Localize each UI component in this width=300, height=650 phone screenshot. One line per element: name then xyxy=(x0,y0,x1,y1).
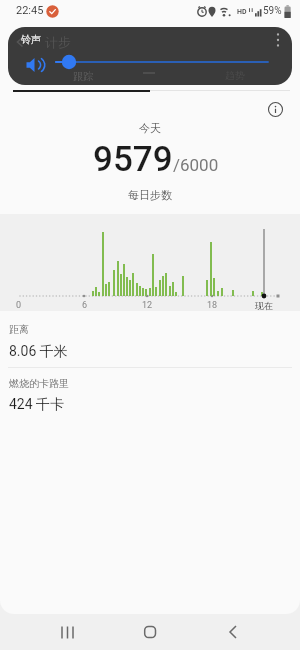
button[interactable] xyxy=(0,60,150,91)
button[interactable] xyxy=(136,618,164,646)
button[interactable] xyxy=(261,95,289,123)
button[interactable] xyxy=(20,51,48,79)
staticText: HD xyxy=(237,8,247,16)
staticText: 18 xyxy=(207,300,218,311)
staticText: 0 xyxy=(16,300,22,311)
button[interactable] xyxy=(219,618,247,646)
staticText: 每日步数 xyxy=(128,188,172,202)
button[interactable] xyxy=(150,60,300,91)
staticText: 今天 xyxy=(139,121,161,135)
button[interactable] xyxy=(266,28,290,52)
staticText: 趋势 xyxy=(225,69,245,82)
staticText: 计步 xyxy=(45,34,71,50)
staticText: 6 xyxy=(82,300,88,311)
staticText: 424 千卡 xyxy=(9,396,65,414)
staticText: 12 xyxy=(142,300,153,311)
staticText: 燃烧的卡路里 xyxy=(9,377,69,390)
staticText: /6000 xyxy=(173,155,219,175)
button[interactable] xyxy=(53,618,81,646)
staticText: 距离 xyxy=(9,323,29,336)
staticText: 铃声 xyxy=(21,33,41,46)
staticText: 22:45 xyxy=(16,4,44,17)
staticText: 现在 xyxy=(255,300,273,311)
staticText: 9579 xyxy=(93,139,173,180)
staticText: 8.06 千米 xyxy=(9,343,68,361)
staticText: 59% xyxy=(263,5,282,17)
staticText: 跟踪 xyxy=(73,70,93,83)
